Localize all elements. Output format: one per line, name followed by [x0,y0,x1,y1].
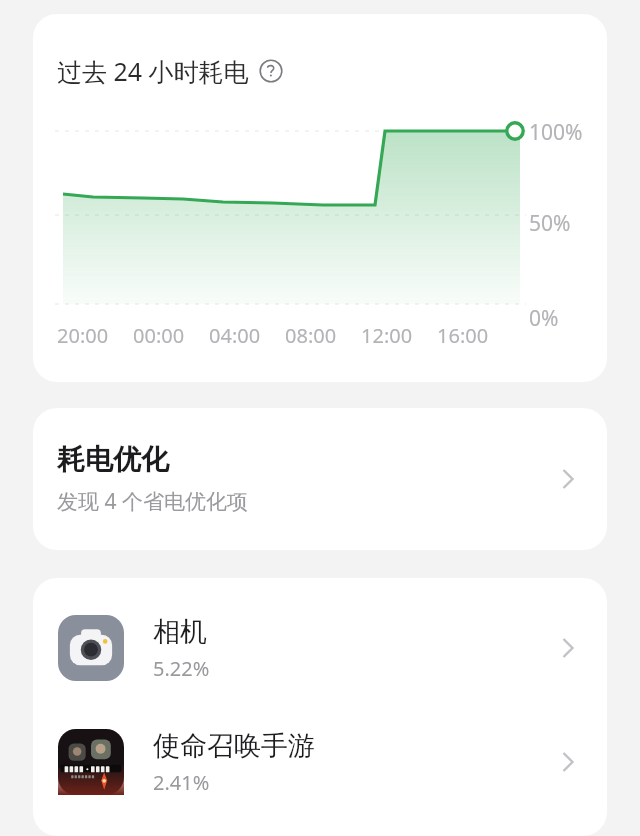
button[interactable]: 使命召唤手游 [33,714,607,810]
staticText: 耗电优化 [57,442,169,477]
staticText: 20:00 [57,322,109,349]
staticText: 100% [529,118,583,147]
staticText: 5.22% [153,655,210,682]
staticText: 50% [529,209,571,238]
button[interactable]: 帮助 [259,59,283,83]
staticText: 相机 [153,615,207,649]
button[interactable]: 相机 [33,600,607,696]
staticText: 发现 4 个省电优化项 [57,487,248,516]
other: 查看详情 [551,462,585,496]
staticText: 16:00 [437,322,489,349]
staticText: 12:00 [361,322,413,349]
staticText: 08:00 [285,322,337,349]
other: 查看详情 [551,631,585,665]
staticText: 00:00 [133,322,185,349]
other: 查看详情 [551,745,585,779]
staticText: 04:00 [209,322,261,349]
staticText: 过去 24 小时耗电 [57,54,249,88]
staticText: 0% [529,304,559,333]
button[interactable]: 耗电优化 [33,408,607,550]
staticText: 2.41% [153,769,210,796]
staticText: 使命召唤手游 [153,729,315,763]
